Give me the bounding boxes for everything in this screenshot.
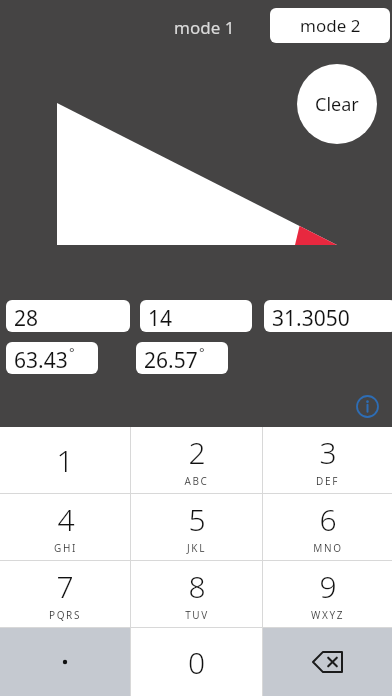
- staticText: 3: [319, 432, 337, 473]
- staticText: °: [69, 343, 75, 361]
- staticText: ABC: [184, 474, 209, 488]
- button[interactable]: 14: [140, 300, 252, 332]
- button[interactable]: Info: [353, 392, 381, 420]
- staticText: 1: [56, 440, 74, 481]
- staticText: 26.57: [144, 346, 198, 374]
- staticText: 63.43: [14, 346, 68, 374]
- button[interactable]: 28: [6, 300, 130, 332]
- staticText: WXYZ: [311, 608, 344, 622]
- staticText: 7: [56, 566, 74, 607]
- staticText: 2: [188, 432, 206, 473]
- staticText: 5: [188, 499, 206, 540]
- button[interactable]: 5: [131, 494, 262, 560]
- staticText: MNO: [313, 541, 343, 555]
- staticText: 31.3050: [272, 304, 350, 332]
- staticText: GHI: [54, 541, 77, 555]
- button[interactable]: 8: [131, 561, 262, 627]
- staticText: JKL: [187, 541, 206, 555]
- staticText: DEF: [316, 474, 339, 488]
- button[interactable]: 26.57: [136, 342, 228, 374]
- staticText: TUV: [185, 608, 209, 622]
- staticText: 4: [57, 499, 75, 540]
- staticText: 8: [188, 566, 206, 607]
- staticText: 14: [148, 304, 173, 332]
- button[interactable]: 6: [263, 494, 392, 560]
- button[interactable]: mode 2: [270, 8, 390, 43]
- button[interactable]: 1: [0, 427, 130, 493]
- staticText: mode 2: [300, 14, 361, 37]
- button[interactable]: Clear: [297, 64, 377, 144]
- button[interactable]: 31.3050: [264, 300, 392, 332]
- button[interactable]: 9: [263, 561, 392, 627]
- button[interactable]: 3: [263, 427, 392, 493]
- button[interactable]: Decimal point: [0, 628, 130, 696]
- button[interactable]: 0: [131, 628, 262, 696]
- staticText: °: [199, 343, 205, 361]
- staticText: PQRS: [49, 608, 81, 622]
- staticText: mode 1: [174, 16, 235, 39]
- button[interactable]: mode 1: [168, 12, 241, 43]
- button[interactable]: 63.43: [6, 342, 98, 374]
- button[interactable]: 7: [0, 561, 130, 627]
- button[interactable]: Backspace: [263, 628, 392, 696]
- button[interactable]: 2: [131, 427, 262, 493]
- staticText: 28: [14, 304, 39, 332]
- staticText: 9: [319, 566, 337, 607]
- staticText: 0: [188, 642, 206, 683]
- button[interactable]: 4: [0, 494, 130, 560]
- staticText: Clear: [315, 92, 359, 117]
- staticText: 6: [319, 499, 337, 540]
